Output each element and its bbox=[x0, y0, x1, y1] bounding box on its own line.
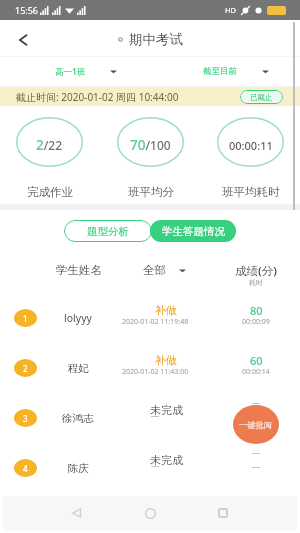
button[interactable]: 4 bbox=[0, 443, 300, 493]
button[interactable]: 题型分析 bbox=[64, 220, 152, 242]
staticText: 截止时间: 2020-01-02 周四 10:44:00 bbox=[16, 90, 179, 104]
button[interactable]: 2 bbox=[0, 343, 300, 393]
staticText: 期中考试 bbox=[129, 31, 183, 48]
staticText: 徐鸿志 bbox=[62, 412, 94, 425]
staticText: 已截止 bbox=[250, 93, 273, 102]
staticText: 一键批阅 bbox=[239, 420, 273, 430]
staticText: 80 bbox=[250, 303, 263, 318]
staticText: 2020-01-02 11:19:48 bbox=[122, 317, 189, 327]
button[interactable]: 一键批阅 bbox=[233, 405, 279, 444]
staticText: 00:00:09 bbox=[242, 317, 270, 327]
button[interactable]: 1 bbox=[0, 293, 300, 343]
staticText: 70/100 bbox=[130, 136, 171, 154]
button[interactable]: 截至目前 bbox=[150, 57, 300, 86]
staticText: 3 bbox=[23, 413, 28, 424]
button[interactable]: 已截止 bbox=[240, 90, 283, 104]
staticText: 耗时 bbox=[249, 278, 263, 287]
staticText: 截至目前 bbox=[203, 66, 237, 77]
staticText: 2020-01-02 11:43:00 bbox=[122, 367, 189, 377]
button[interactable]: 学生答题情况 bbox=[150, 220, 236, 242]
staticText: 2/22 bbox=[36, 136, 63, 154]
staticText: 全部 bbox=[143, 263, 166, 277]
button[interactable]: 高一1班 bbox=[0, 57, 150, 86]
staticText: HD bbox=[225, 5, 237, 15]
staticText: lolyyy bbox=[64, 311, 92, 325]
staticText: 陈庆 bbox=[68, 462, 89, 475]
staticText: 4 bbox=[23, 463, 28, 474]
button[interactable]: Back bbox=[62, 498, 92, 528]
button[interactable]: Recent apps bbox=[208, 498, 238, 528]
staticText: 班平均耗时 bbox=[222, 185, 280, 199]
staticText: 程妃 bbox=[68, 362, 89, 375]
staticText: 补做 bbox=[155, 353, 177, 367]
staticText: 补做 bbox=[155, 303, 177, 317]
button[interactable]: 3 bbox=[0, 393, 300, 443]
button[interactable]: 全部 bbox=[130, 259, 195, 281]
button[interactable]: Back bbox=[3, 22, 43, 58]
staticText: 1 bbox=[23, 313, 28, 324]
staticText: 成绩(分) bbox=[235, 263, 277, 279]
button[interactable]: Home bbox=[135, 498, 165, 528]
staticText: 00:00:14 bbox=[242, 367, 270, 377]
staticText: 未完成 bbox=[150, 403, 183, 417]
staticText: 班平均分 bbox=[128, 185, 174, 199]
staticText: 学生答题情况 bbox=[162, 225, 225, 238]
staticText: 题型分析 bbox=[87, 225, 129, 238]
staticText: 2 bbox=[23, 363, 28, 374]
staticText: 15:56 bbox=[15, 4, 39, 16]
staticText: 00:00:11 bbox=[229, 138, 273, 153]
staticText: 高一1班 bbox=[55, 66, 86, 78]
staticText: 60 bbox=[250, 353, 263, 368]
staticText: 完成作业 bbox=[27, 185, 73, 199]
staticText: 学生姓名 bbox=[56, 263, 102, 277]
staticText: 未完成 bbox=[150, 453, 183, 467]
